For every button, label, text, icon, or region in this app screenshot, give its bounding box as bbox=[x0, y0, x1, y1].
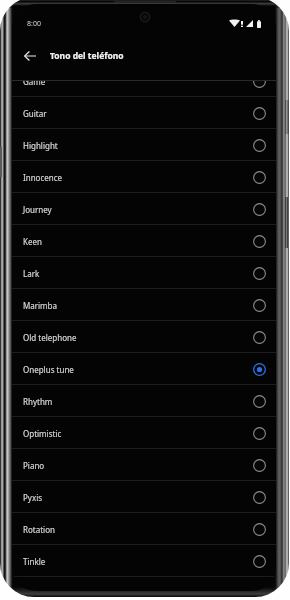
staticText: Oneplus tune bbox=[23, 364, 74, 375]
staticText: Marimba bbox=[23, 300, 57, 311]
button[interactable]: Game bbox=[12, 80, 276, 97]
button[interactable]: Back bbox=[14, 40, 46, 72]
button[interactable]: Marimba bbox=[12, 289, 276, 321]
staticText: Rotation bbox=[23, 524, 55, 535]
staticText: Keen bbox=[23, 236, 42, 247]
staticText: Rhythm bbox=[23, 396, 53, 407]
staticText: Old telephone bbox=[23, 332, 77, 343]
button[interactable]: Oneplus tune bbox=[12, 353, 276, 385]
button[interactable]: Guitar bbox=[12, 97, 276, 129]
staticText: Lark bbox=[23, 268, 40, 279]
staticText: Innocence bbox=[23, 172, 63, 183]
button[interactable]: Tinkle bbox=[12, 545, 276, 577]
button[interactable]: Highlight bbox=[12, 129, 276, 161]
button[interactable]: Optimistic bbox=[12, 417, 276, 449]
button[interactable]: Pyxis bbox=[12, 481, 276, 513]
staticText: Piano bbox=[23, 460, 45, 471]
staticText: Tinkle bbox=[23, 556, 46, 567]
staticText: Pyxis bbox=[23, 492, 43, 503]
staticText: 8:00 bbox=[27, 19, 41, 29]
staticText: Journey bbox=[23, 204, 52, 215]
button[interactable]: Lark bbox=[12, 257, 276, 289]
button[interactable]: Piano bbox=[12, 449, 276, 481]
staticText: Game bbox=[23, 80, 46, 87]
staticText: Optimistic bbox=[23, 428, 62, 439]
button[interactable]: Journey bbox=[12, 193, 276, 225]
button[interactable]: Rotation bbox=[12, 513, 276, 545]
staticText: Highlight bbox=[23, 140, 58, 151]
button[interactable]: Old telephone bbox=[12, 321, 276, 353]
staticText: Guitar bbox=[23, 108, 47, 119]
staticText: Tono del teléfono bbox=[50, 50, 124, 62]
button[interactable]: Keen bbox=[12, 225, 276, 257]
button[interactable]: Innocence bbox=[12, 161, 276, 193]
button[interactable]: Rhythm bbox=[12, 385, 276, 417]
